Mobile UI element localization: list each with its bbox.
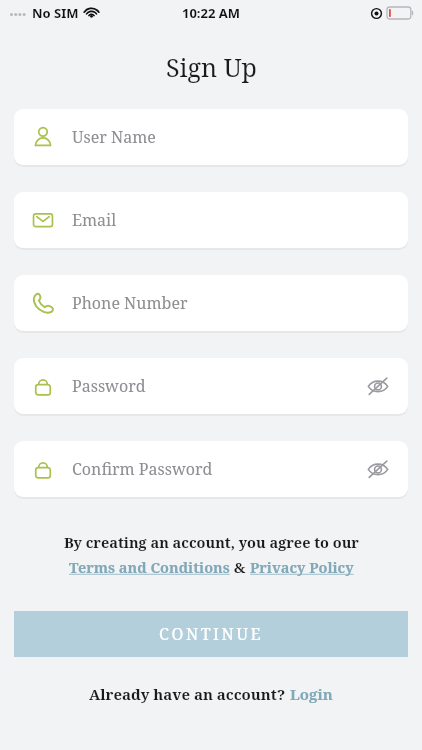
staticText: Already have an account?	[89, 684, 290, 704]
button[interactable]: Phone Number	[14, 275, 408, 331]
staticText: CONTINUE	[159, 623, 264, 645]
staticText: No SIM	[32, 4, 79, 22]
button[interactable]: Terms and Conditions	[69, 557, 230, 577]
staticText: Sign Up	[166, 50, 257, 84]
staticText: Email	[72, 209, 392, 231]
button[interactable]: Login	[290, 684, 333, 704]
button[interactable]: Show password	[364, 372, 392, 400]
staticText: Confirm Password	[72, 458, 364, 480]
button[interactable]: Email	[14, 192, 408, 248]
button[interactable]: CONTINUE	[14, 611, 408, 657]
staticText: User Name	[72, 126, 392, 148]
button[interactable]: Password	[14, 358, 408, 414]
button[interactable]: Confirm Password	[14, 441, 408, 497]
staticText: Login	[290, 684, 333, 704]
button[interactable]: Show password	[364, 455, 392, 483]
button[interactable]: User Name	[14, 109, 408, 165]
staticText: By creating an account, you agree to our	[64, 532, 359, 552]
staticText: Password	[72, 375, 364, 397]
staticText: Phone Number	[72, 292, 392, 314]
button[interactable]: Privacy Policy	[250, 557, 354, 577]
staticText: &	[230, 557, 250, 577]
staticText: Privacy Policy	[250, 557, 354, 577]
staticText: 10:22 AM	[182, 4, 241, 22]
staticText: Terms and Conditions	[69, 557, 230, 577]
